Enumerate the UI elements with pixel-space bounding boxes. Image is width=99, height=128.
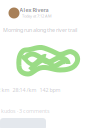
staticText: Today at 7:12 AM [22,13,52,19]
staticText: 5.2 km 28:14 /km 142 bpm [0,86,60,94]
staticText: Alex Rivera [19,6,48,14]
staticText: Morning run along the river trail [3,26,77,34]
staticText: 12 kudos · 3 comments [0,107,50,115]
